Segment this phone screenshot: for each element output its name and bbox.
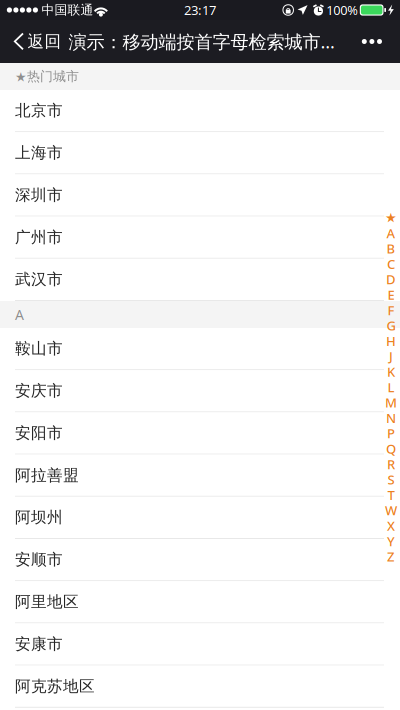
staticText: 100% (326, 1, 358, 19)
staticText: G (386, 317, 395, 334)
button[interactable]: 安庆市 (0, 370, 400, 412)
staticText: ★热门城市 (15, 68, 79, 85)
button[interactable]: E (382, 287, 400, 302)
button[interactable]: 鞍山市 (0, 328, 400, 370)
button[interactable]: 阿坝州 (0, 497, 400, 539)
button[interactable]: J (382, 349, 400, 364)
staticText: J (389, 347, 393, 365)
button[interactable]: M (382, 395, 400, 410)
staticText: T (387, 486, 394, 504)
button[interactable]: 广州市 (0, 217, 400, 259)
button[interactable]: G (382, 318, 400, 333)
button[interactable]: F (382, 302, 400, 318)
staticText: 中国联通 (41, 2, 93, 18)
button[interactable]: 深圳市 (0, 174, 400, 217)
staticText: 上海市 (15, 143, 63, 163)
staticText: Y (387, 532, 395, 550)
staticText: W (385, 501, 397, 519)
button[interactable]: H (382, 333, 400, 349)
button[interactable]: S (382, 472, 400, 487)
staticText: 阿坝州 (15, 508, 63, 527)
button[interactable]: K (382, 364, 400, 379)
staticText: F (387, 301, 394, 319)
button[interactable]: 安康市 (0, 623, 400, 666)
button[interactable]: Z (382, 549, 400, 564)
button[interactable]: L (382, 379, 400, 395)
staticText: 武汉市 (15, 270, 63, 289)
staticText: X (387, 517, 395, 535)
staticText: R (387, 455, 395, 473)
button[interactable]: Q (382, 441, 400, 456)
staticText: Z (387, 548, 395, 565)
button[interactable]: More (350, 20, 400, 63)
button[interactable]: 阿拉善盟 (0, 455, 400, 497)
button[interactable]: 武汉市 (0, 259, 400, 301)
staticText: ★ (385, 210, 397, 225)
button[interactable]: X (382, 518, 400, 533)
button[interactable]: R (382, 456, 400, 472)
button[interactable]: T (382, 487, 400, 503)
staticText: 北京市 (15, 101, 63, 120)
button[interactable]: 返回 (0, 20, 66, 63)
staticText: M (385, 394, 397, 411)
button[interactable]: B (382, 241, 400, 256)
staticText: 23:17 (184, 1, 216, 19)
staticText: K (387, 363, 395, 381)
staticText: 阿拉善盟 (15, 465, 79, 485)
button[interactable]: W (382, 503, 400, 518)
button[interactable]: 阿里地区 (0, 581, 400, 623)
staticText: A (386, 224, 395, 242)
button[interactable]: 上海市 (0, 132, 400, 174)
staticText: 安康市 (15, 634, 63, 654)
staticText: D (386, 270, 396, 288)
staticText: L (387, 378, 394, 396)
staticText: 阿克苏地区 (15, 676, 95, 696)
staticText: Q (386, 440, 396, 458)
staticText: 鞍山市 (15, 339, 63, 358)
button[interactable]: Y (382, 533, 400, 549)
staticText: 阿里地区 (15, 592, 79, 612)
button[interactable]: D (382, 272, 400, 287)
staticText: 返回 (27, 31, 61, 52)
button[interactable]: N (382, 410, 400, 426)
staticText: E (387, 286, 394, 304)
staticText: 安庆市 (15, 381, 63, 401)
staticText: 安阳市 (15, 423, 63, 443)
staticText: N (386, 409, 396, 427)
staticText: A (15, 305, 24, 324)
button[interactable]: P (382, 426, 400, 441)
button[interactable]: 北京市 (0, 90, 400, 132)
staticText: H (386, 332, 396, 350)
button[interactable]: 安顺市 (0, 539, 400, 581)
staticText: S (387, 471, 394, 488)
button[interactable]: C (382, 256, 400, 272)
staticText: 演示：移动端按首字母检索城市… (68, 29, 334, 54)
button[interactable]: ★ (382, 210, 400, 225)
staticText: B (386, 240, 395, 257)
staticText: 广州市 (15, 227, 63, 247)
button[interactable]: 安阳市 (0, 412, 400, 455)
staticText: P (387, 424, 395, 442)
staticText: C (387, 255, 395, 273)
button[interactable]: 阿克苏地区 (0, 666, 400, 708)
staticText: 安顺市 (15, 550, 63, 569)
staticText: 深圳市 (15, 185, 63, 205)
button[interactable]: A (382, 225, 400, 241)
